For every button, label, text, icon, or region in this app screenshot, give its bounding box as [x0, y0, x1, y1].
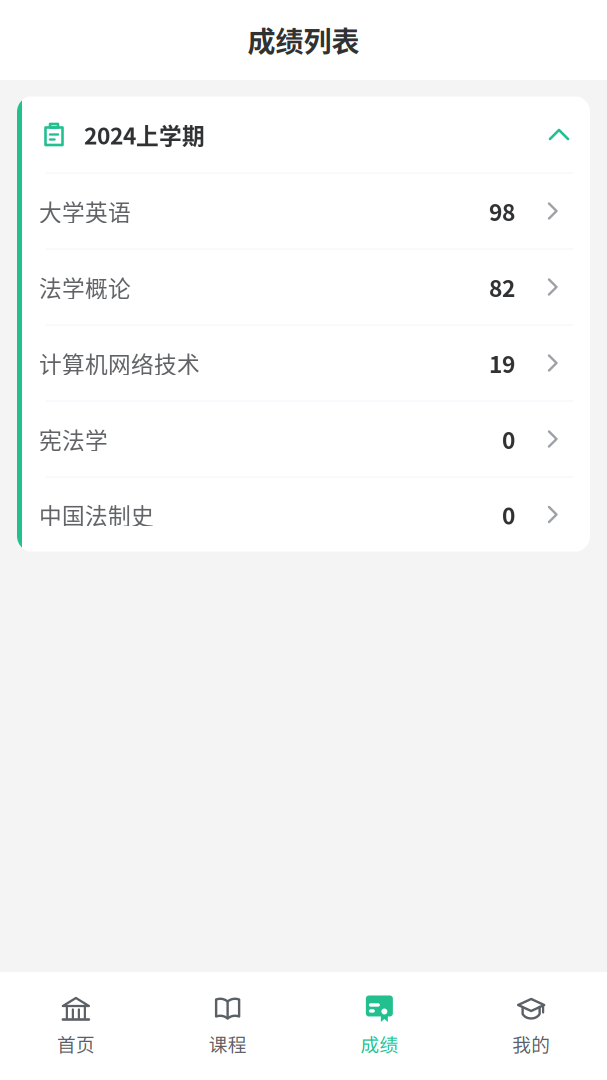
staticText: 中国法制史 [39, 498, 154, 531]
staticText: 0 [502, 423, 515, 455]
button[interactable]: 课程 [152, 972, 304, 1080]
staticText: 成绩 [360, 1030, 398, 1057]
staticText: 我的 [512, 1030, 550, 1057]
staticText: 法学概论 [39, 271, 131, 303]
staticText: 课程 [209, 1030, 247, 1057]
staticText: 宪法学 [39, 423, 108, 455]
staticText: 2024上学期 [84, 118, 205, 151]
staticText: 计算机网络技术 [39, 347, 200, 379]
staticText: 大学英语 [39, 195, 131, 227]
staticText: 19 [489, 347, 515, 379]
staticText: 成绩列表 [247, 20, 359, 60]
button[interactable]: 2024上学期 [22, 96, 590, 172]
button[interactable]: 大学英语 [22, 173, 590, 249]
staticText: 0 [502, 498, 515, 531]
button[interactable]: 首页 [0, 972, 152, 1080]
button[interactable]: 宪法学 [22, 401, 590, 477]
button[interactable]: 中国法制史 [22, 477, 590, 551]
button[interactable]: 我的 [455, 972, 607, 1080]
staticText: 98 [489, 195, 515, 227]
staticText: 首页 [57, 1030, 95, 1057]
button[interactable]: 成绩 [303, 972, 455, 1080]
button[interactable]: 法学概论 [22, 249, 590, 325]
button[interactable]: 计算机网络技术 [22, 325, 590, 401]
staticText: 82 [489, 271, 515, 303]
